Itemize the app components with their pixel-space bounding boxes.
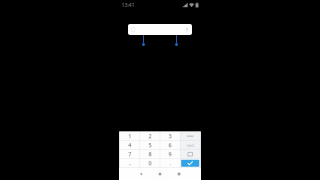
button[interactable]: . [160, 159, 180, 167]
staticText: 0 [148, 160, 151, 167]
staticText: 2 [148, 133, 151, 140]
staticText: 1 [128, 133, 131, 140]
staticText: , [129, 160, 130, 167]
button[interactable]: , [120, 159, 140, 167]
staticText: 9 [169, 151, 172, 158]
button[interactable]: 3 [160, 132, 180, 140]
button[interactable]: 8 [140, 150, 160, 158]
button[interactable]: Done [180, 159, 200, 167]
button[interactable]: 9 [160, 150, 180, 158]
button[interactable]: 0 [140, 159, 160, 167]
button[interactable]: 2 [140, 132, 160, 140]
staticText: 13:41 [121, 1, 134, 9]
button[interactable]: Home [155, 168, 165, 180]
button[interactable]: 7 [120, 150, 140, 158]
button[interactable]: Delete [180, 132, 200, 140]
staticText: 8 [148, 151, 151, 158]
staticText: . [170, 160, 171, 167]
button[interactable]: 5 [140, 141, 160, 149]
button[interactable]: 4 [120, 141, 140, 149]
staticText: 6 [169, 142, 172, 149]
staticText: next [187, 142, 194, 148]
button[interactable]: Search field [128, 24, 192, 35]
button[interactable]: Back [136, 168, 146, 180]
staticText: 7 [128, 151, 131, 158]
button[interactable]: 6 [160, 141, 180, 149]
button[interactable]: Recents [174, 168, 184, 180]
button[interactable]: Next [180, 141, 200, 149]
button[interactable]: 1 [120, 132, 140, 140]
button[interactable]: Symbols [180, 150, 200, 158]
staticText: 4 [128, 142, 131, 149]
staticText: 5 [148, 142, 151, 149]
staticText: 3 [169, 133, 172, 140]
